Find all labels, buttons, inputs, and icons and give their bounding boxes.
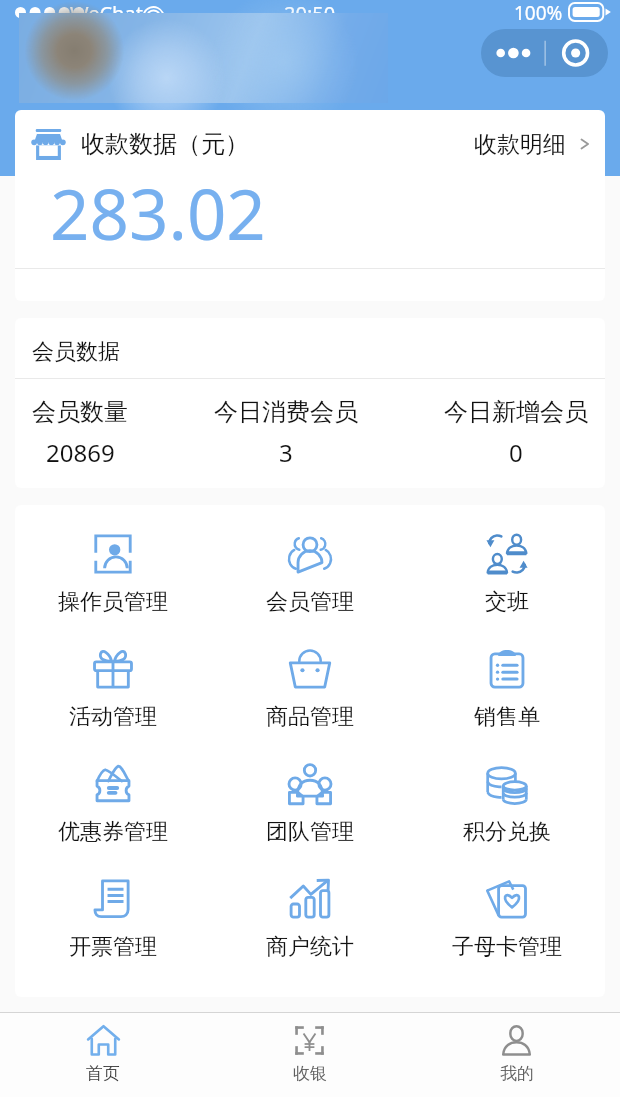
staticText: 商品管理 [266, 703, 354, 731]
button[interactable]: 收款数据（元） [15, 110, 605, 178]
staticText: 20869 [46, 436, 115, 469]
staticText: 100% [514, 0, 563, 24]
button[interactable]: 积分兑换 [408, 763, 605, 846]
staticText: 操作员管理 [58, 588, 168, 616]
staticText: 会员数量 [32, 397, 128, 427]
staticText: 我的 [500, 1063, 534, 1084]
staticText: WeChat [70, 0, 143, 24]
button[interactable]: 活动管理 [15, 648, 211, 731]
button[interactable]: 今日新增会员 [444, 397, 588, 469]
button[interactable]: 今日消费会员 [214, 397, 358, 469]
button[interactable]: 收银 [206, 1013, 413, 1084]
button[interactable]: 商户统计 [211, 878, 408, 961]
staticText: 首页 [86, 1063, 120, 1084]
button[interactable]: 销售单 [408, 648, 605, 731]
button[interactable]: 我的 [413, 1013, 620, 1084]
staticText: 团队管理 [266, 818, 354, 846]
button[interactable]: 交班 [408, 533, 605, 616]
button[interactable]: 开票管理 [15, 878, 211, 961]
button[interactable]: 会员数量 [32, 397, 128, 469]
button[interactable]: 操作员管理 [15, 533, 211, 616]
staticText: 今日消费会员 [214, 397, 358, 427]
staticText: 优惠券管理 [58, 818, 168, 846]
staticText: 283.02 [50, 166, 266, 260]
button[interactable]: 团队管理 [211, 763, 408, 846]
staticText: 积分兑换 [463, 818, 551, 846]
button[interactable]: 商品管理 [211, 648, 408, 731]
staticText: 收款明细 [474, 130, 566, 159]
staticText: 会员管理 [266, 588, 354, 616]
staticText: 今日新增会员 [444, 397, 588, 427]
staticText: 收银 [293, 1063, 327, 1084]
staticText: 活动管理 [69, 703, 157, 731]
staticText: 开票管理 [69, 933, 157, 961]
button[interactable]: More options and close mini program [481, 29, 608, 77]
button[interactable]: 会员管理 [211, 533, 408, 616]
staticText: 收款数据（元） [81, 129, 249, 159]
staticText: 商户统计 [266, 933, 354, 961]
staticText: 销售单 [474, 703, 540, 731]
staticText: 交班 [485, 588, 529, 616]
staticText: 20:50 [284, 0, 336, 24]
staticText: 子母卡管理 [452, 933, 562, 961]
staticText: 0 [509, 436, 523, 469]
staticText: 3 [279, 436, 293, 469]
staticText: 会员数据 [32, 338, 120, 366]
button[interactable]: 首页 [0, 1013, 206, 1084]
button[interactable]: 子母卡管理 [408, 878, 605, 961]
button[interactable]: 优惠券管理 [15, 763, 211, 846]
